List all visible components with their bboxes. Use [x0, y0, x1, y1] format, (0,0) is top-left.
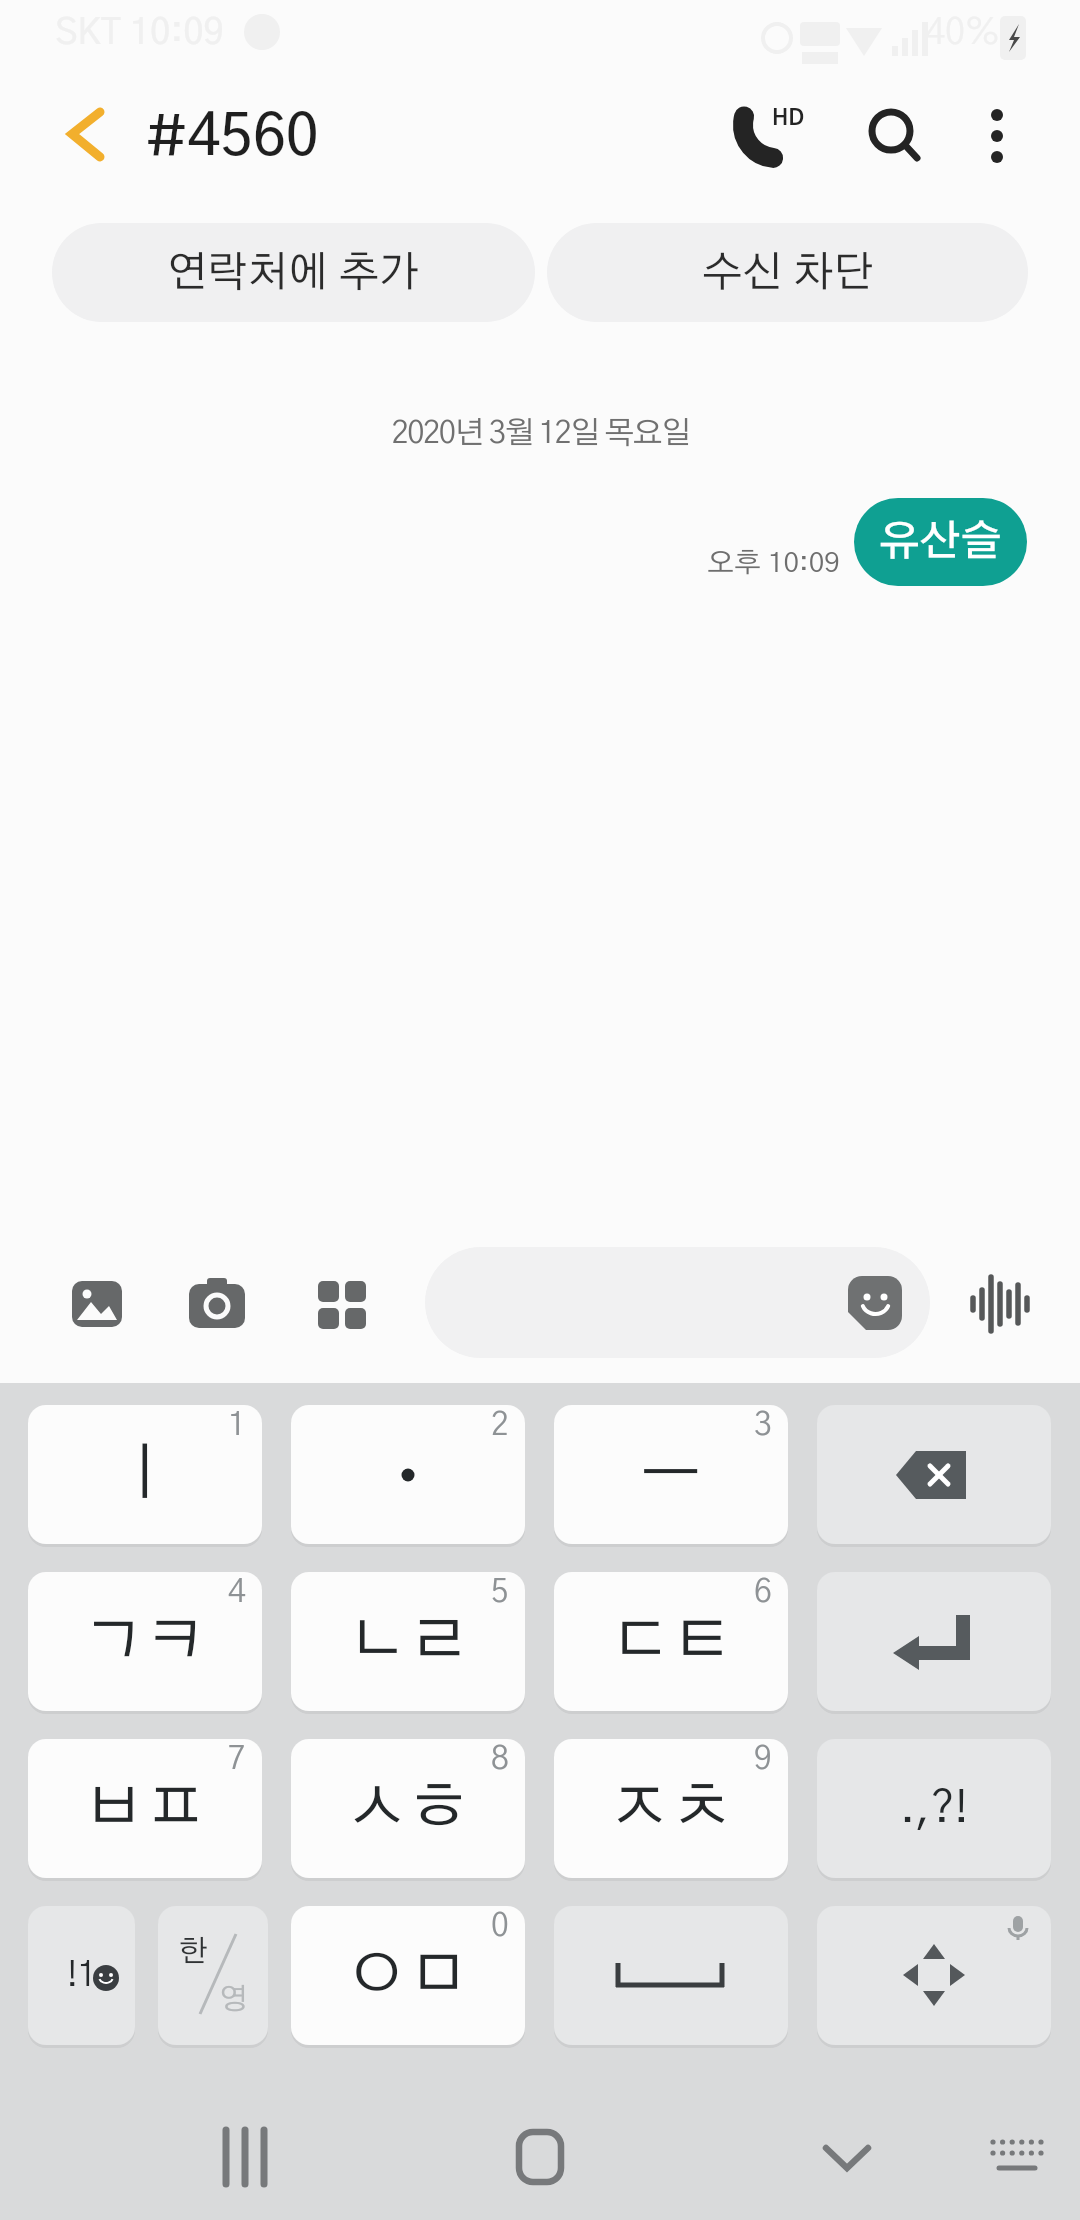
staticText: HD [772, 107, 805, 129]
staticText: #4560 [145, 109, 319, 167]
button[interactable] [45, 95, 125, 175]
button[interactable]: ㅣ [28, 1405, 262, 1544]
staticText: ㅇㅁ [346, 1945, 470, 2007]
button[interactable] [817, 1906, 1051, 2045]
button[interactable]: !1 [28, 1906, 135, 2045]
staticText: 연락처에 추가 [167, 252, 420, 294]
staticText: SKT 10:09 [55, 15, 224, 51]
staticText: 1 [228, 1409, 246, 1441]
button[interactable]: ㅅㅎ [291, 1739, 525, 1878]
button[interactable]: ㄷㅌ [554, 1572, 788, 1711]
button[interactable] [310, 1272, 374, 1336]
staticText: 유산슬 [879, 521, 1002, 563]
staticText: ㄴㄹ [346, 1611, 470, 1673]
button[interactable] [977, 2118, 1057, 2198]
button[interactable]: .,?! [817, 1739, 1051, 1878]
staticText: 5 [491, 1576, 509, 1608]
button[interactable]: ㄱㅋ [28, 1572, 262, 1711]
staticText: 오후 10:09 [707, 550, 840, 578]
button[interactable]: ㅡ [554, 1405, 788, 1544]
button[interactable] [817, 1572, 1051, 1711]
staticText: ㅂㅍ [83, 1778, 207, 1840]
staticText: ㅈㅊ [609, 1778, 733, 1840]
button[interactable] [554, 1906, 788, 2045]
staticText: ㅡ [640, 1444, 702, 1506]
button[interactable]: 유산슬 [854, 498, 1027, 586]
staticText: 40% [925, 15, 1000, 51]
button[interactable]: HD [730, 95, 820, 180]
button[interactable] [807, 2118, 887, 2198]
staticText: ㅣ [114, 1444, 176, 1506]
staticText: 수신 차단 [702, 252, 874, 294]
staticText: 한 [179, 1937, 208, 1967]
staticText: 0 [491, 1910, 509, 1942]
button[interactable] [855, 95, 935, 180]
staticText: 6 [754, 1576, 772, 1608]
staticText: 2 [491, 1409, 509, 1441]
staticText: !1 [67, 1959, 97, 1993]
staticText: 4 [228, 1576, 246, 1608]
button[interactable]: 한 [158, 1906, 268, 2045]
button[interactable] [185, 1272, 249, 1336]
button[interactable] [205, 2118, 285, 2198]
staticText: 영 [219, 1985, 248, 2015]
button[interactable] [965, 1272, 1035, 1336]
staticText: 8 [491, 1743, 509, 1775]
button[interactable]: ㄴㄹ [291, 1572, 525, 1711]
staticText: 3 [754, 1409, 772, 1441]
button[interactable]: 연락처에 추가 [52, 223, 535, 322]
staticText: 9 [754, 1743, 772, 1775]
button[interactable] [500, 2118, 580, 2198]
button[interactable]: 수신 차단 [547, 223, 1028, 322]
staticText: 2020년 3월 12일 목요일 [391, 418, 690, 449]
staticText: ㄷㅌ [609, 1611, 733, 1673]
button[interactable] [65, 1272, 129, 1336]
button[interactable]: ㅇㅁ [291, 1906, 525, 2045]
staticText: ㄱㅋ [83, 1611, 207, 1673]
staticText: 7 [228, 1743, 246, 1775]
button[interactable]: ㅈㅊ [554, 1739, 788, 1878]
button[interactable] [817, 1405, 1051, 1544]
staticText: ㅅㅎ [346, 1778, 470, 1840]
button[interactable]: ㅂㅍ [28, 1739, 262, 1878]
button[interactable]: 2 [291, 1405, 525, 1544]
button[interactable] [425, 1247, 930, 1358]
button[interactable] [960, 95, 1040, 180]
staticText: .,?! [900, 1787, 969, 1831]
